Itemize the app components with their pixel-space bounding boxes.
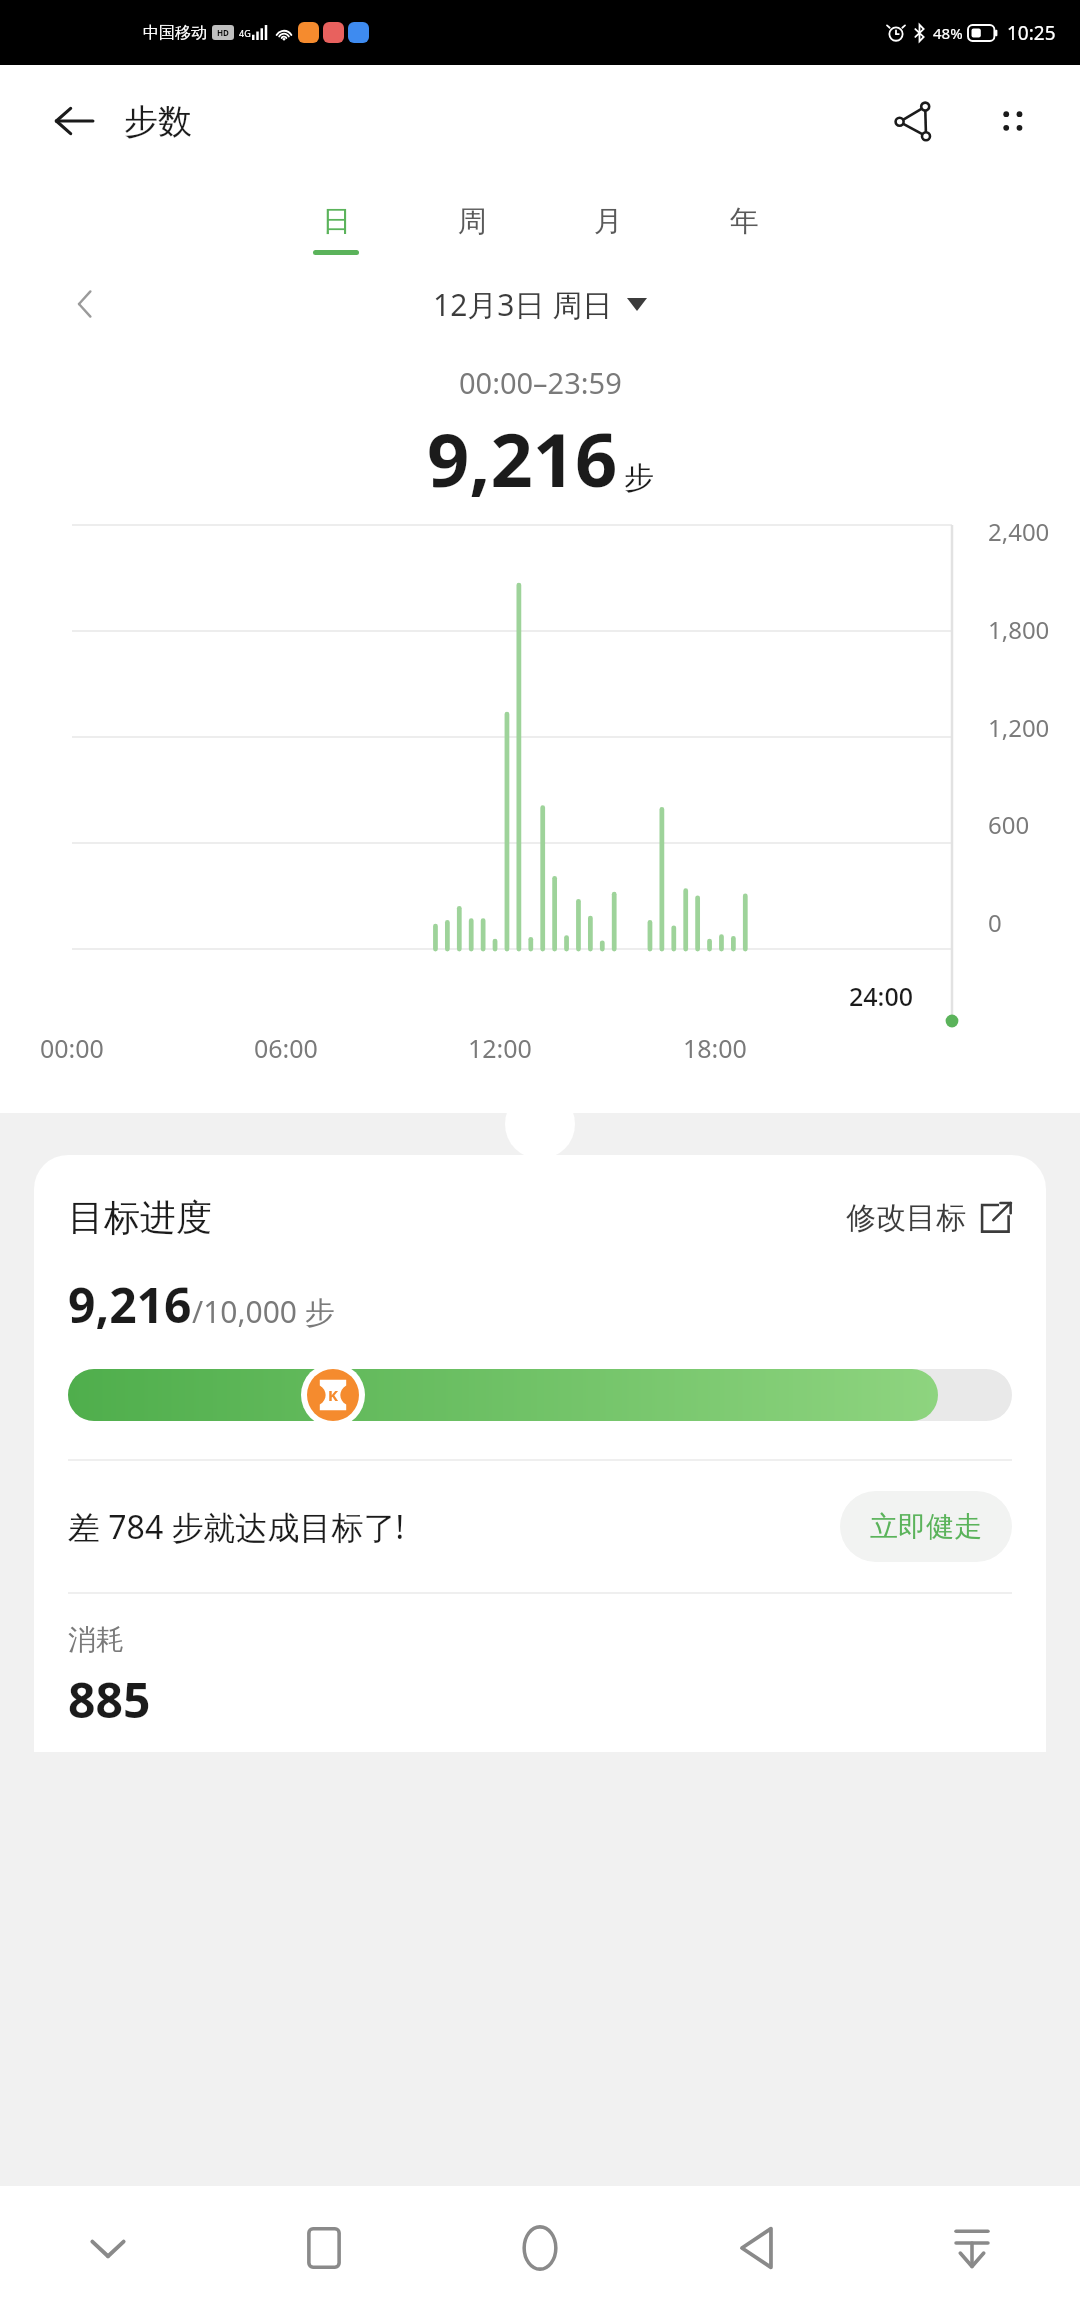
staticText: 2,400 (988, 515, 1050, 548)
button[interactable]: Collapse (0, 2186, 216, 2310)
button[interactable]: 年 (676, 203, 812, 255)
staticText: HD (217, 27, 229, 38)
staticText: 步 (624, 459, 654, 497)
button[interactable]: Back (648, 2186, 864, 2310)
staticText: K (328, 1385, 338, 1405)
staticText: 1,800 (988, 613, 1050, 646)
staticText: 0 (988, 906, 1002, 939)
staticText: 中国移动 (143, 23, 207, 43)
staticText: 4G (239, 27, 251, 39)
button[interactable]: More options (984, 93, 1040, 149)
staticText: 年 (730, 203, 759, 240)
button[interactable]: 月 (540, 203, 676, 255)
staticText: 12月3日 周日 (433, 284, 613, 325)
staticText: 18:00 (683, 1031, 747, 1065)
button[interactable]: Share (884, 91, 944, 151)
button[interactable]: 立即健走 (840, 1491, 1012, 1562)
staticText: 00:00 (40, 1031, 104, 1065)
staticText: 00:00–23:59 (459, 363, 622, 402)
button[interactable]: Back (46, 93, 102, 149)
staticText: 48% (933, 23, 963, 43)
staticText: 06:00 (254, 1031, 318, 1065)
button[interactable]: 日 (268, 203, 404, 255)
staticText: 885 (68, 1667, 151, 1732)
staticText: 24:00 (849, 979, 914, 1013)
staticText: 10:25 (1007, 20, 1056, 46)
button[interactable]: 12月3日 周日 (433, 284, 647, 325)
staticText: 12:00 (468, 1031, 532, 1065)
staticText: /10,000 步 (192, 1291, 335, 1332)
staticText: 600 (988, 808, 1030, 841)
staticText: 步数 (124, 100, 192, 143)
button[interactable]: Previous day (58, 277, 112, 331)
staticText: 消耗 (68, 1622, 124, 1657)
staticText: 9,216 (427, 408, 618, 509)
staticText: 立即健走 (870, 1509, 982, 1544)
button[interactable]: Download (864, 2186, 1080, 2310)
staticText: 目标进度 (68, 1195, 212, 1240)
staticText: 日 (322, 203, 351, 240)
button[interactable]: Recents (216, 2186, 432, 2310)
staticText: 9,216 (68, 1272, 192, 1337)
staticText: 月 (594, 203, 623, 240)
staticText: 1,200 (988, 711, 1050, 744)
button[interactable]: 周 (404, 203, 540, 255)
button[interactable]: Home (432, 2186, 648, 2310)
button[interactable]: 修改目标 (846, 1199, 1012, 1237)
staticText: 周 (458, 203, 487, 240)
button[interactable]: Drag handle (505, 1089, 575, 1159)
staticText: 修改目标 (846, 1199, 966, 1237)
staticText: 差 784 步就达成目标了! (68, 1505, 405, 1549)
